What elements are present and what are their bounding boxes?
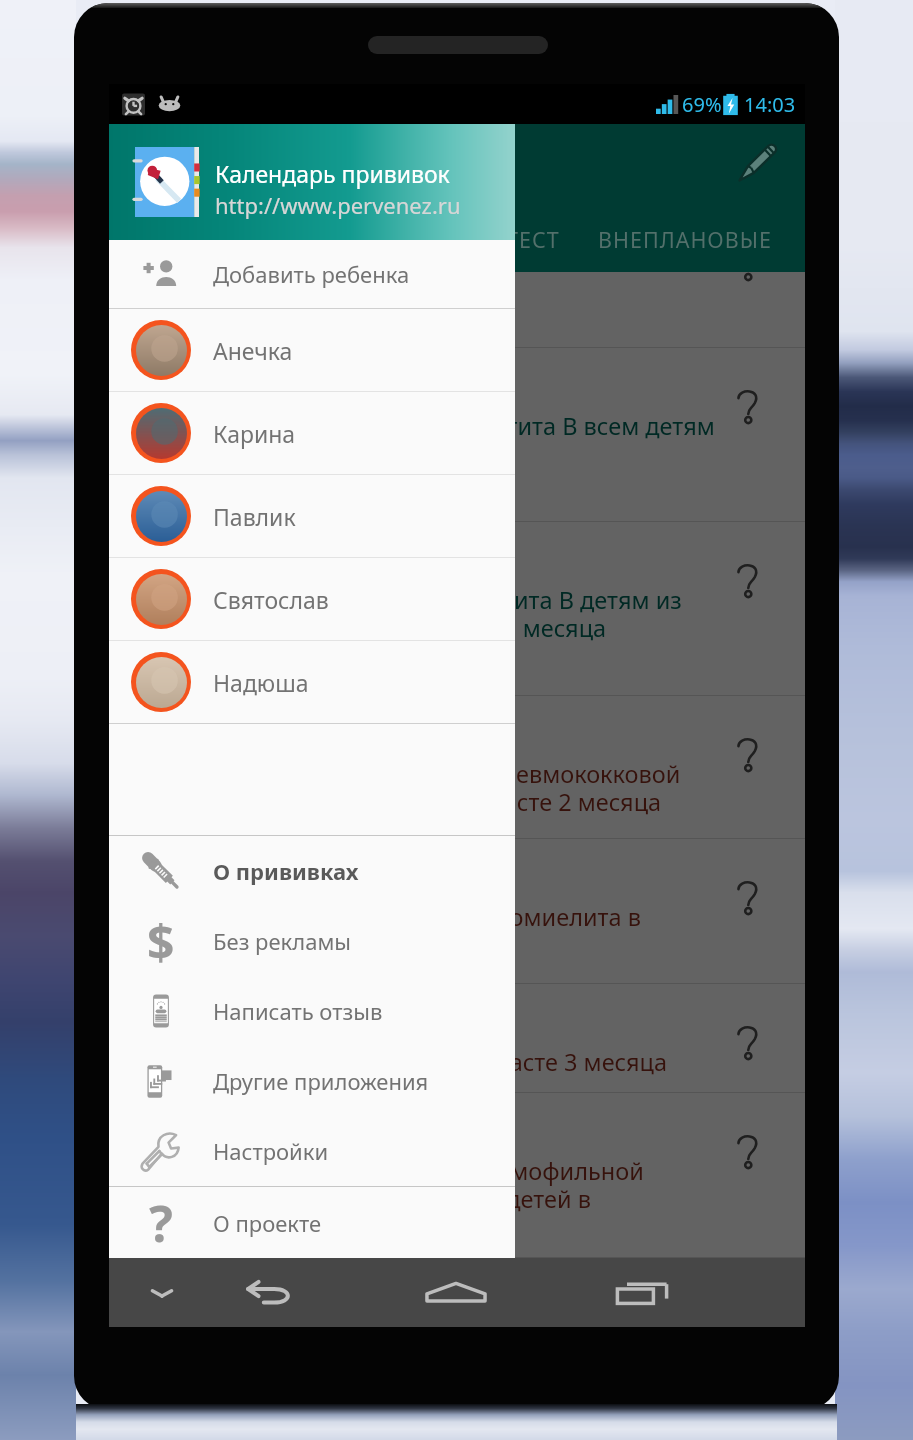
staticText: 7 лет <box>135 358 192 390</box>
staticText: Календарь прививок <box>215 158 450 189</box>
button[interactable]: ТЕСТ <box>487 218 579 261</box>
staticText: 3 месяца <box>135 1246 238 1278</box>
button[interactable]: Hide keyboard <box>122 1258 202 1327</box>
button[interactable]: Анечка <box>109 309 515 391</box>
staticText: Вторая вакцинация против полиомиелита в … <box>135 901 641 961</box>
button[interactable]: Первая вакцинация против гепатита В всем… <box>109 348 805 522</box>
button[interactable]: Календарь прививок <box>109 124 515 240</box>
staticText: 3 месяца <box>135 964 238 996</box>
button[interactable]: Настройки <box>109 1116 515 1186</box>
button[interactable]: Другие приложения <box>109 1046 515 1116</box>
staticText: ? <box>149 1189 173 1257</box>
staticText: 69% <box>682 91 722 118</box>
button[interactable]: Recents <box>605 1258 685 1327</box>
button[interactable]: Надюша <box>109 641 515 723</box>
staticText: http://www.pervenez.ru <box>215 190 461 220</box>
staticText: $ <box>147 909 175 974</box>
button[interactable]: Вторая вакцинация против гепатита В детя… <box>109 522 805 696</box>
staticText: первые 24 часа <box>135 473 312 505</box>
staticText: 1 месяц <box>135 647 225 679</box>
button[interactable]: Святослав <box>109 558 515 640</box>
staticText: ВНЕПЛАНОВЫЕ <box>598 225 772 254</box>
staticText: Написать отзыв <box>213 996 383 1026</box>
button[interactable]: $ <box>109 906 515 976</box>
staticText: Первая вакцинация АКДС в возрасте 3 меся… <box>135 1046 667 1078</box>
staticText: Ревакцинация против туберку- леза БЦЖ на… <box>135 267 490 355</box>
staticText: 3 месяца <box>135 1080 238 1112</box>
staticText: Добавить ребенка <box>213 259 410 289</box>
staticText: Первая вакцинация против от пневмококков… <box>135 758 681 818</box>
button[interactable]: Карина <box>109 392 515 474</box>
staticText: О прививках <box>213 856 359 886</box>
staticText: Другие приложения <box>213 1066 429 1096</box>
staticText: О проекте <box>213 1208 322 1238</box>
button[interactable]: Первая вакцинация АКДС в возрасте 3 меся… <box>109 984 805 1093</box>
button[interactable]: КАЛЕНДАРЬ <box>314 218 487 261</box>
staticText: Первая вакцинация против гепатита В всем… <box>135 410 715 470</box>
button[interactable]: Написать отзыв <box>109 976 515 1046</box>
staticText: КАЛЕНДАРЬ <box>333 225 468 254</box>
staticText: 2 месяца <box>135 821 238 853</box>
staticText: 14:03 <box>744 91 796 118</box>
button[interactable]: Home <box>416 1258 496 1327</box>
button[interactable]: Павлик <box>109 475 515 557</box>
button[interactable]: ВНЕПЛАНОВЫЕ <box>579 218 791 261</box>
staticText: Павлик <box>213 501 296 532</box>
button[interactable]: Edit <box>729 133 787 191</box>
button[interactable]: Первая вакцинация против от пневмококков… <box>109 696 805 839</box>
staticText: Первая вакцинация против от гемофильной … <box>135 1155 644 1243</box>
button[interactable]: Добавить ребенка <box>109 240 515 308</box>
button[interactable]: ? <box>109 1187 515 1258</box>
staticText: Вторая вакцинация против гепатита В детя… <box>135 584 682 644</box>
button[interactable]: Back <box>229 1258 309 1327</box>
staticText: Надюша <box>213 667 309 698</box>
staticText: Настройки <box>213 1136 329 1166</box>
staticText: ТЕСТ <box>506 225 560 254</box>
staticText: Анечка <box>213 335 293 366</box>
staticText: Без рекламы <box>213 926 352 956</box>
staticText: Карина <box>213 418 296 449</box>
staticText: Святослав <box>213 584 329 615</box>
button[interactable]: Первая вакцинация против от гемофильной … <box>109 1093 805 1258</box>
button[interactable]: Ревакцинация против туберку- леза БЦЖ на… <box>109 205 805 348</box>
button[interactable]: Вторая вакцинация против полиомиелита в … <box>109 839 805 984</box>
button[interactable]: О прививках <box>109 836 515 906</box>
